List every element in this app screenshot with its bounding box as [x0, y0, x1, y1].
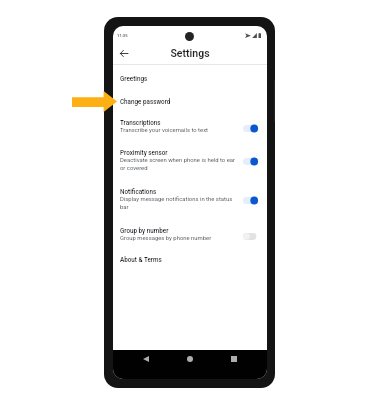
staticText: About & Terms	[120, 256, 162, 263]
staticText: 11:35	[117, 33, 128, 38]
button[interactable]: Home	[183, 352, 197, 366]
button[interactable]: Greetings	[113, 67, 267, 90]
button[interactable]: Change password	[113, 90, 267, 113]
staticText: Notifications	[120, 188, 157, 195]
staticText: Change password	[120, 98, 171, 105]
button[interactable]: Back	[139, 352, 153, 366]
button[interactable]: Notifications	[113, 181, 267, 220]
button[interactable]: Proximity sensor	[113, 142, 267, 181]
staticText: Settings	[113, 47, 267, 59]
staticText: Transcribe your voicemails to text	[120, 127, 209, 134]
button[interactable]: Recent apps	[227, 352, 241, 366]
button[interactable]: About & Terms	[113, 248, 267, 271]
staticText: Greetings	[120, 75, 148, 82]
button[interactable]: Group by number	[113, 221, 267, 251]
staticText: Display message notifications in the sta…	[120, 196, 240, 211]
staticText: Group by number	[120, 227, 169, 234]
button[interactable]: Back	[117, 46, 131, 60]
staticText: Group messages by phone number	[120, 235, 212, 242]
staticText: Transcriptions	[120, 119, 161, 126]
button[interactable]: Toggle	[243, 231, 259, 242]
button[interactable]: Transcriptions	[113, 113, 267, 143]
button[interactable]: Toggle	[243, 123, 259, 134]
button[interactable]: Toggle	[243, 156, 259, 167]
button[interactable]: Toggle	[243, 195, 259, 206]
staticText: Deactivate screen when phone is held to …	[120, 157, 240, 172]
staticText: Proximity sensor	[120, 149, 168, 156]
